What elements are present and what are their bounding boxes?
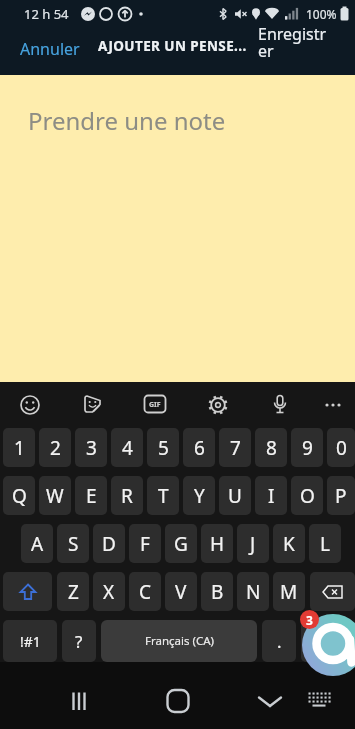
button[interactable]: D — [93, 524, 125, 563]
button[interactable] — [16, 391, 44, 419]
button[interactable]: O — [291, 476, 323, 515]
button[interactable]: T — [147, 476, 179, 515]
button[interactable]: 0 — [327, 428, 355, 467]
staticText: B — [211, 579, 224, 605]
staticText: P — [335, 483, 347, 509]
staticText: H — [210, 531, 225, 557]
button[interactable]: V — [165, 572, 197, 611]
button[interactable]: Annuler — [14, 32, 86, 66]
button[interactable]: Y — [183, 476, 215, 515]
button[interactable]: I — [255, 476, 287, 515]
button[interactable]: E — [75, 476, 107, 515]
staticText: Annuler — [20, 38, 80, 60]
staticText: Enregistrer — [258, 23, 330, 62]
button[interactable]: B — [201, 572, 233, 611]
staticText: Q — [12, 483, 27, 509]
button[interactable]: X — [93, 572, 125, 611]
staticText: R — [121, 483, 133, 509]
button[interactable]: 2 — [39, 428, 71, 467]
staticText: 0 — [336, 435, 347, 461]
button[interactable]: 7 — [219, 428, 251, 467]
button[interactable]: 9 — [291, 428, 323, 467]
button[interactable]: G — [165, 524, 197, 563]
staticText: K — [283, 531, 295, 557]
button[interactable] — [254, 685, 286, 717]
button[interactable]: . — [262, 620, 296, 662]
button[interactable]: U — [219, 476, 251, 515]
staticText: M — [280, 579, 298, 605]
staticText: 7 — [230, 435, 241, 461]
staticText: 2 — [50, 435, 61, 461]
staticText: Y — [194, 483, 205, 509]
button[interactable] — [310, 572, 355, 611]
button[interactable]: J — [237, 524, 269, 563]
button[interactable]: A — [21, 524, 53, 563]
staticText: W — [46, 483, 64, 509]
button[interactable]: 3 — [75, 428, 107, 467]
staticText: E — [86, 483, 97, 509]
staticText: 9 — [302, 435, 313, 461]
button[interactable]: 4 — [111, 428, 143, 467]
staticText: . — [277, 630, 282, 653]
button[interactable]: M — [273, 572, 305, 611]
staticText: N — [246, 579, 261, 605]
staticText: 12 h 54 — [24, 5, 69, 23]
button[interactable]: W — [39, 476, 71, 515]
staticText: V — [175, 579, 187, 605]
button[interactable]: Enregistrer — [258, 23, 330, 62]
button[interactable] — [162, 685, 194, 717]
button[interactable] — [266, 391, 294, 419]
button[interactable]: Z — [57, 572, 89, 611]
staticText: 3 — [306, 612, 313, 628]
staticText: F — [140, 531, 150, 557]
button[interactable]: L — [309, 524, 341, 563]
staticText: J — [250, 531, 256, 557]
staticText: O — [300, 483, 315, 509]
staticText: AJOUTER UN PENSE... — [98, 37, 247, 55]
button[interactable] — [319, 391, 347, 419]
button[interactable]: 5 — [147, 428, 179, 467]
button[interactable] — [204, 391, 232, 419]
staticText: 5 — [158, 435, 169, 461]
staticText: !#1 — [20, 632, 41, 651]
button[interactable]: N — [237, 572, 269, 611]
staticText: 4 — [122, 435, 133, 461]
button[interactable]: ? — [62, 620, 96, 662]
staticText: D — [102, 531, 116, 557]
staticText: 100% — [306, 6, 337, 22]
staticText: GIF — [149, 400, 161, 410]
button[interactable]: F — [129, 524, 161, 563]
button[interactable] — [303, 685, 335, 717]
button[interactable]: P — [327, 476, 355, 515]
staticText: 1 — [14, 435, 25, 461]
button[interactable]: Prendre une note — [0, 75, 355, 382]
staticText: U — [228, 483, 242, 509]
button[interactable] — [301, 620, 352, 662]
staticText: C — [139, 579, 152, 605]
button[interactable] — [79, 391, 107, 419]
button[interactable]: S — [57, 524, 89, 563]
staticText: I — [268, 483, 275, 509]
button[interactable]: 8 — [255, 428, 287, 467]
button[interactable]: Français (CA) — [101, 620, 257, 662]
staticText: T — [158, 483, 169, 509]
button[interactable]: !#1 — [3, 620, 57, 662]
staticText: G — [174, 531, 188, 557]
button[interactable]: 6 — [183, 428, 215, 467]
button[interactable]: K — [273, 524, 305, 563]
button[interactable] — [3, 572, 52, 611]
button[interactable]: R — [111, 476, 143, 515]
staticText: 8 — [266, 435, 277, 461]
button[interactable]: C — [129, 572, 161, 611]
button[interactable]: H — [201, 524, 233, 563]
staticText: L — [320, 531, 330, 557]
staticText: Z — [68, 579, 79, 605]
button[interactable] — [63, 685, 95, 717]
staticText: S — [68, 531, 79, 557]
button[interactable]: GIF — [141, 393, 169, 417]
button[interactable]: Q — [3, 476, 35, 515]
button[interactable]: 3 — [301, 614, 355, 676]
staticText: 3 — [86, 435, 97, 461]
staticText: Prendre une note — [28, 104, 226, 137]
button[interactable]: 1 — [3, 428, 35, 467]
